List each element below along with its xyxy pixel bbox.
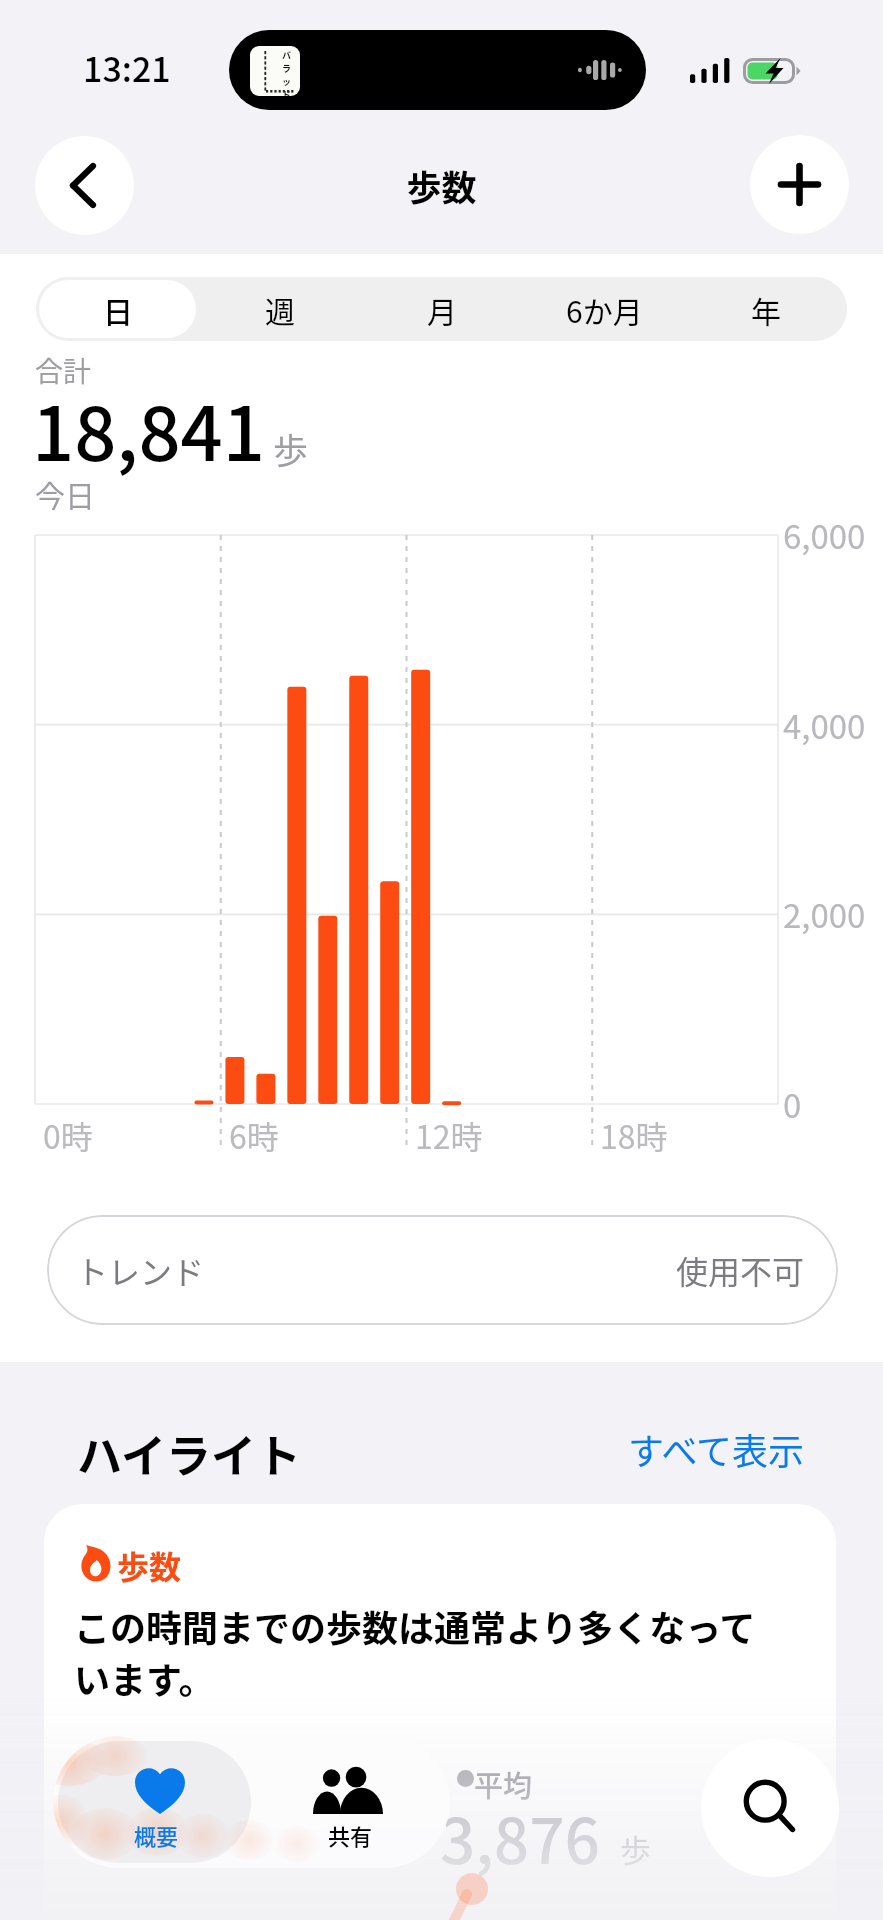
staticText: 今日 [35,472,95,515]
button[interactable]: 概要 [58,1741,251,1863]
staticText: 6,000 [783,511,866,559]
staticText: 日 [103,288,133,331]
staticText: 18,841 [32,375,265,482]
staticText: 使用不可 [676,1247,805,1293]
staticText: 概要 [134,1819,179,1851]
staticText: 4,000 [783,701,866,749]
staticText: 歩数 [117,1542,182,1588]
staticText: 2,000 [783,890,866,938]
button[interactable]: 6か月 [526,280,682,338]
staticText: 合計 [35,350,92,391]
button[interactable]: Back [35,136,134,235]
staticText: 月 [427,288,457,331]
button[interactable]: 月 [364,280,520,338]
staticText: ッ [282,75,292,88]
staticText: 歩 [273,423,309,474]
staticText: 共有 [328,1819,373,1851]
button[interactable]: 歩数 [44,1504,836,1920]
staticText: トレンド [76,1247,205,1293]
staticText: 0 [783,1080,802,1128]
button[interactable]: Add [750,135,849,234]
staticText: 歩 [620,1826,651,1871]
staticText: 平均 [474,1763,533,1805]
staticText: 歩数 [0,160,883,211]
staticText: 週 [265,288,295,331]
staticText: ハイライト [77,1421,302,1486]
button[interactable]: 日 [39,280,196,338]
staticText: ド [282,88,292,96]
button[interactable]: Search [701,1739,839,1877]
staticText: 年 [751,288,781,331]
button[interactable]: トレンド [47,1215,838,1325]
staticText: バ [282,49,292,62]
staticText: 3,876 [440,1792,600,1882]
button[interactable]: 共有 [251,1741,445,1863]
staticText: 6時 [229,1112,279,1158]
staticText: 18時 [600,1112,668,1158]
button[interactable]: 週 [202,280,358,338]
staticText: 12時 [415,1112,483,1158]
staticText: この時間までの歩数は通常より多くなっています。 [74,1600,774,1705]
button[interactable]: すべて表示 [628,1423,805,1475]
staticText: ラ [282,62,292,75]
staticText: 13:21 [83,43,171,92]
staticText: 0時 [43,1112,93,1158]
button[interactable]: 年 [688,280,844,338]
staticText: 6か月 [566,288,643,331]
